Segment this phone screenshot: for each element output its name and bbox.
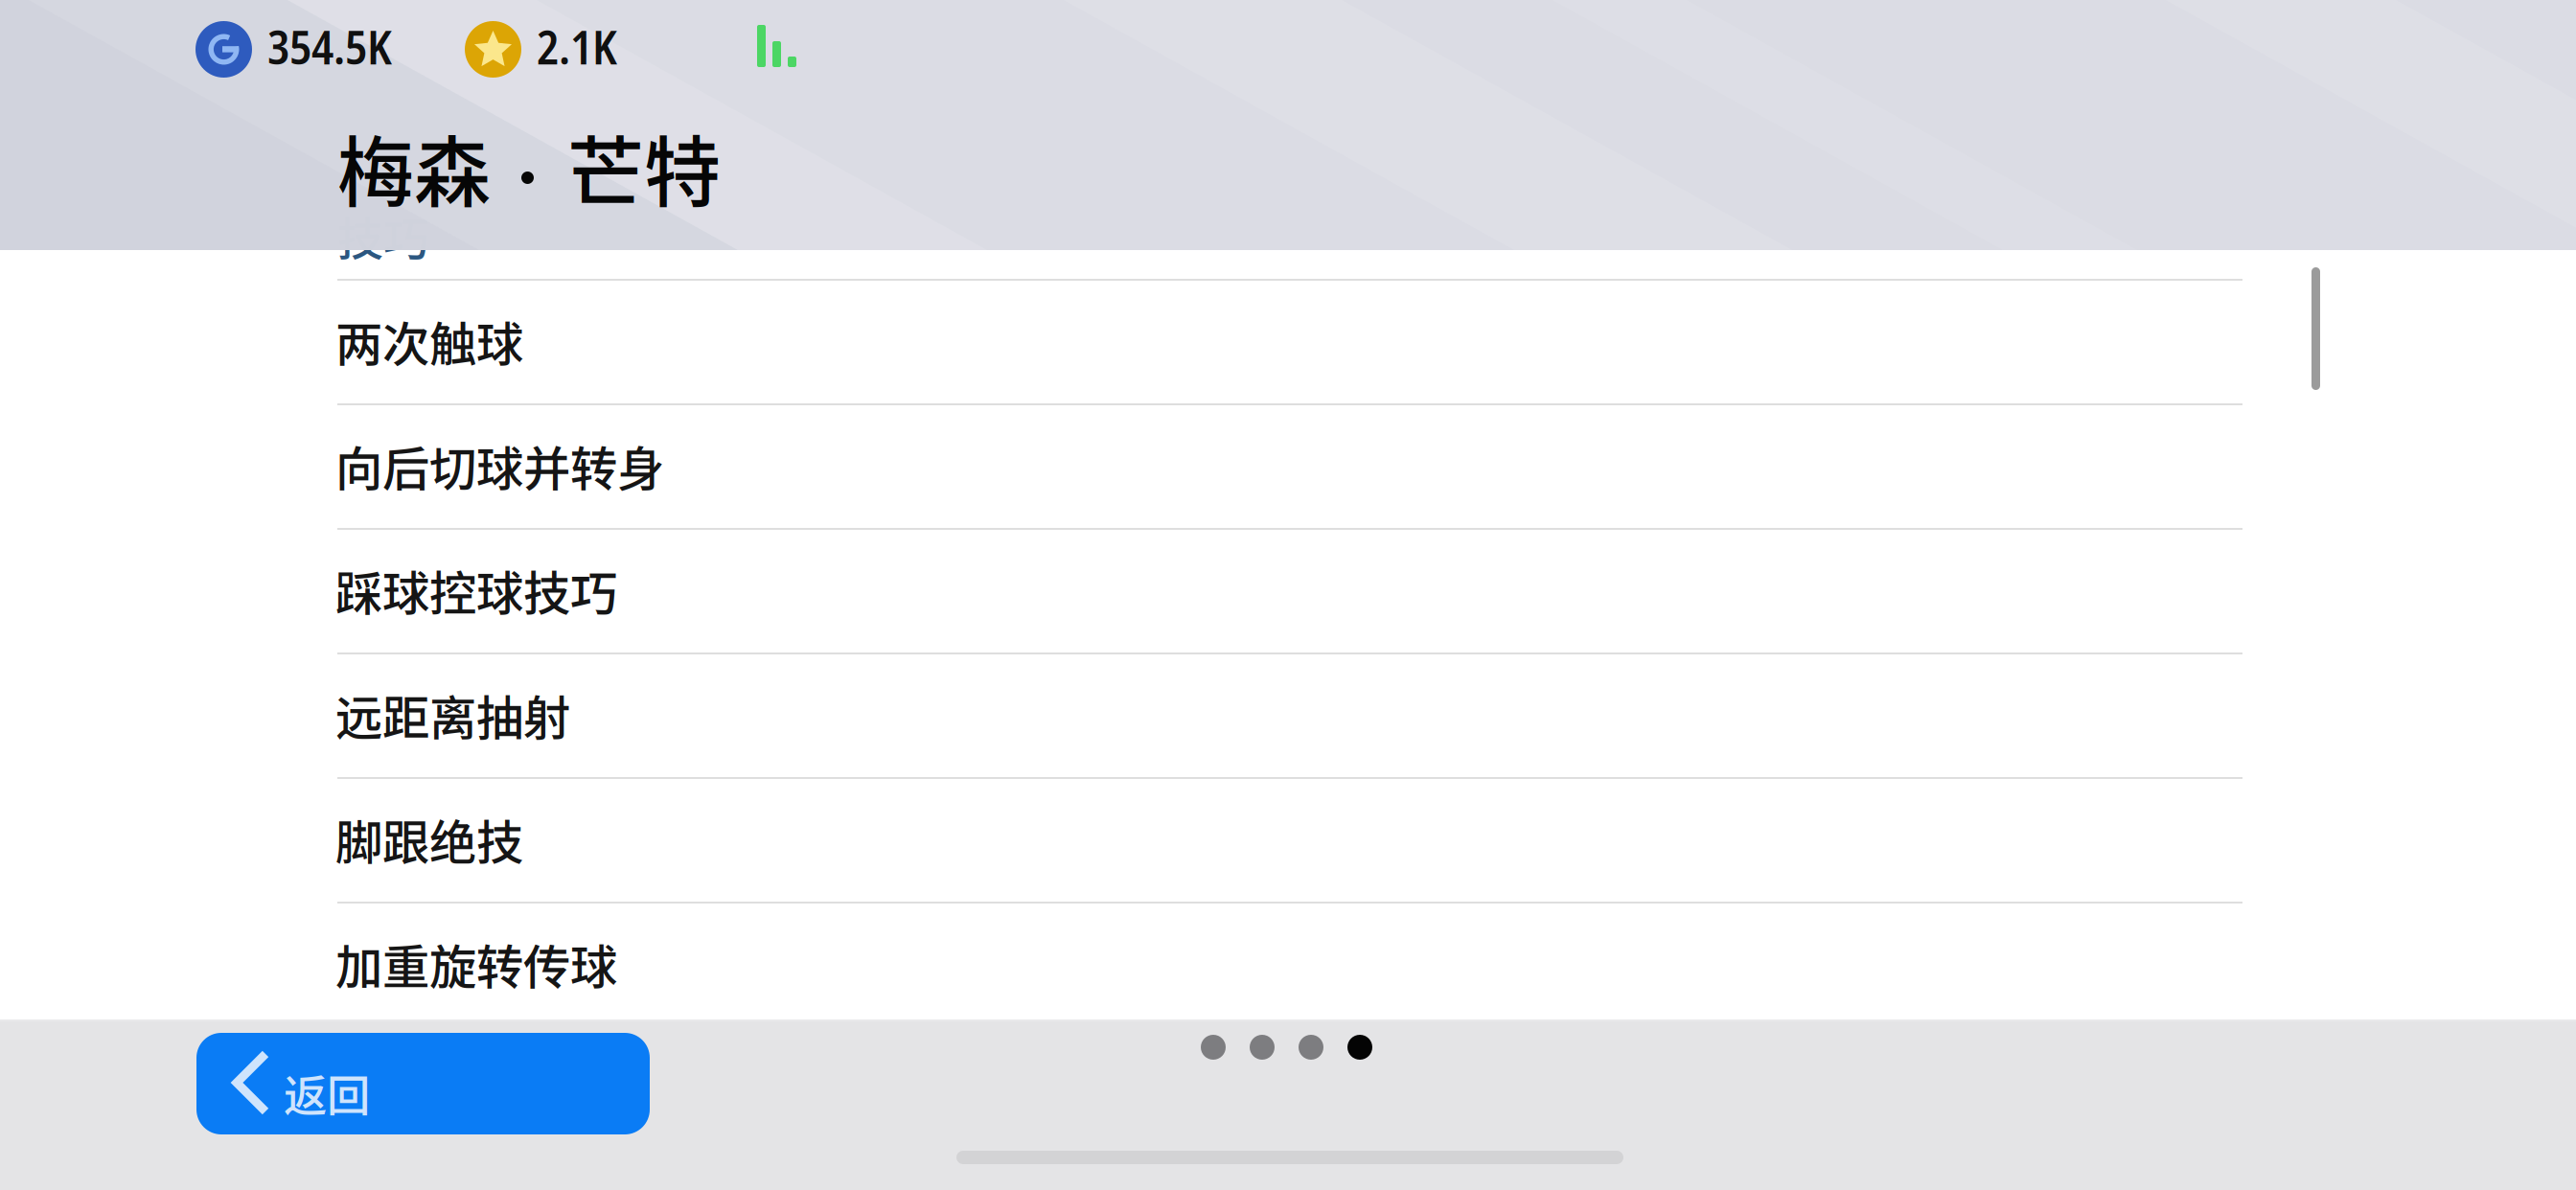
button[interactable]: 脚跟绝技: [337, 777, 2242, 902]
staticText: 芒特: [567, 111, 721, 222]
button[interactable]: 远距离抽射: [337, 652, 2242, 777]
button[interactable]: 加重旋转传球: [337, 902, 2242, 1026]
staticText: 梅森: [337, 111, 491, 222]
button[interactable]: 两次触球: [337, 279, 2242, 403]
button[interactable]: Connection strength: [757, 25, 796, 67]
button[interactable]: Page 4 of 4: [1201, 1034, 1412, 1061]
button[interactable]: 向后切球并转身: [337, 403, 2242, 528]
staticText: 远距离抽射: [335, 680, 570, 749]
staticText: 加重旋转传球: [335, 929, 617, 998]
staticText: 354.5K: [267, 15, 392, 78]
button[interactable]: 踩球控球技巧: [337, 528, 2242, 652]
staticText: 向后切球并转身: [335, 431, 664, 500]
staticText: 踩球控球技巧: [335, 556, 617, 624]
button[interactable]: 354.5K: [195, 14, 512, 84]
staticText: 脚跟绝技: [335, 805, 523, 873]
staticText: 两次触球: [335, 307, 523, 375]
staticText: 2.1K: [537, 15, 617, 78]
staticText: 技巧: [337, 202, 429, 269]
button[interactable]: 返回: [196, 1033, 650, 1134]
staticText: 返回: [284, 1062, 370, 1124]
button[interactable]: 2.1K: [465, 14, 695, 84]
